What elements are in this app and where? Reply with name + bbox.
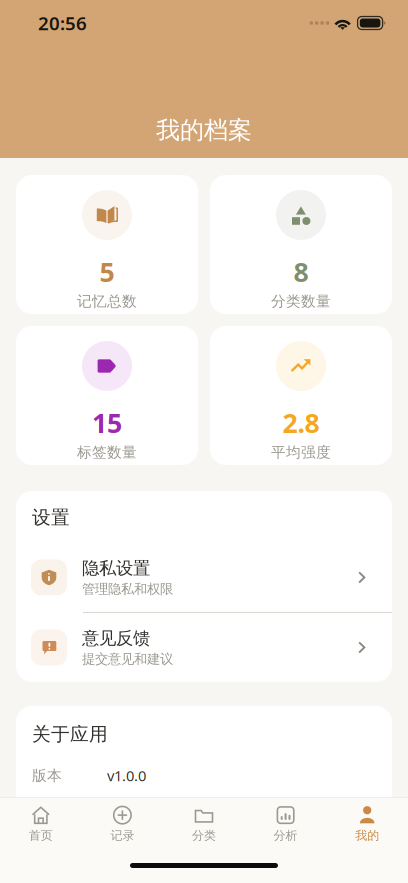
staticText: 我的档案 xyxy=(156,115,252,145)
button[interactable]: 分类 xyxy=(163,796,245,849)
staticText: 记忆总数 xyxy=(77,292,137,310)
staticText: 气味记忆团队 xyxy=(107,800,197,818)
staticText: 版本 xyxy=(32,767,62,785)
staticText: 意见反馈 xyxy=(82,628,150,649)
button[interactable]: 我的 xyxy=(326,796,408,849)
staticText: 开发者 xyxy=(32,800,77,818)
staticText: 设置 xyxy=(32,506,70,529)
button[interactable]: 隐私设置 xyxy=(16,543,392,612)
staticText: 首页 xyxy=(29,828,53,843)
staticText: 20:56 xyxy=(38,11,87,35)
button[interactable]: 首页 xyxy=(0,796,82,849)
button[interactable]: 记录 xyxy=(82,796,163,849)
staticText: 我的 xyxy=(355,828,379,843)
button[interactable]: 分析 xyxy=(245,796,326,849)
staticText: 管理隐私和权限 xyxy=(82,581,173,597)
staticText: 标签数量 xyxy=(77,443,137,461)
staticText: 分类 xyxy=(192,828,216,843)
button[interactable]: 意见反馈 xyxy=(16,613,392,682)
staticText: 平均强度 xyxy=(271,443,331,461)
staticText: 提交意见和建议 xyxy=(82,651,173,667)
staticText: v1.0.0 xyxy=(107,766,146,785)
staticText: 2.8 xyxy=(282,405,319,440)
staticText: 记录 xyxy=(110,828,134,843)
staticText: 分析 xyxy=(274,828,298,843)
staticText: 分类数量 xyxy=(271,292,331,310)
staticText: 关于应用 xyxy=(32,723,108,746)
staticText: 隐私设置 xyxy=(82,558,150,579)
staticText: 15 xyxy=(92,405,122,440)
staticText: 8 xyxy=(293,254,308,289)
staticText: 5 xyxy=(99,254,114,289)
